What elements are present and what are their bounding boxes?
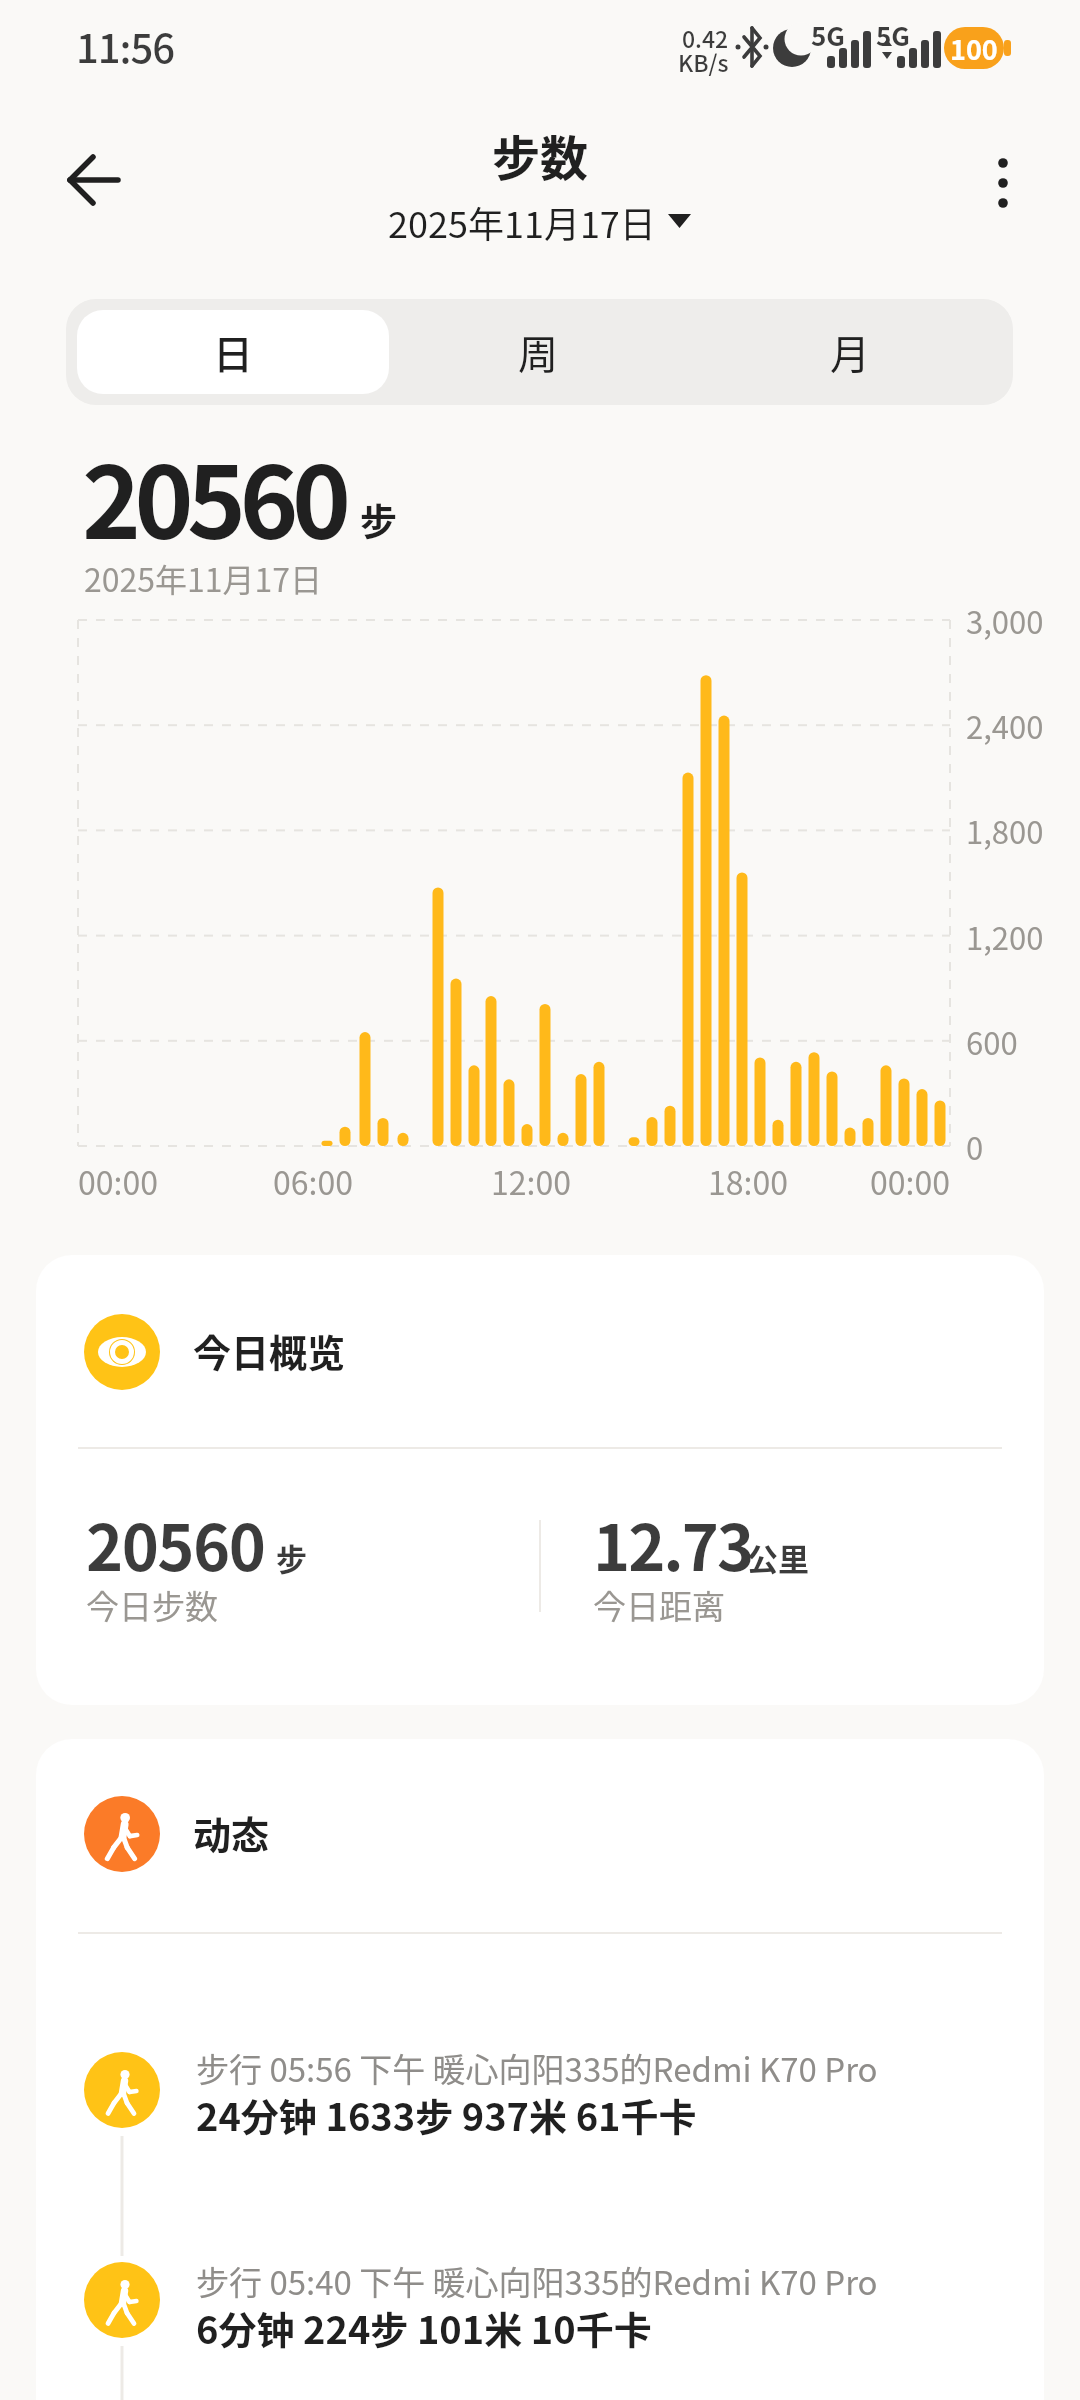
staticText: 步行 05:40 下午 暖心向阳335的Redmi K70 Pro — [196, 2257, 878, 2305]
staticText: 0.42 — [682, 21, 729, 54]
staticText: 6分钟 224步 101米 10千卡 — [196, 2300, 652, 2355]
staticText: 00:00 — [870, 1158, 950, 1204]
staticText: 2025年11月17日 — [84, 555, 323, 601]
button[interactable] — [701, 299, 1013, 405]
staticText: 20560 — [86, 1498, 265, 1589]
staticText: 日 — [213, 323, 253, 381]
staticText: 月 — [830, 323, 870, 381]
staticText: 0 — [966, 1124, 984, 1169]
staticText: 11:56 — [76, 17, 175, 75]
staticText: 1,200 — [966, 914, 1044, 959]
staticText: 周 — [518, 323, 558, 381]
staticText: 12.73 — [593, 1498, 753, 1589]
staticText: 步 — [360, 493, 397, 547]
staticText: 步 — [276, 1535, 307, 1580]
staticText: 2025年11月17日 — [388, 196, 656, 248]
staticText: 00:00 — [78, 1158, 158, 1204]
staticText: 600 — [966, 1019, 1018, 1064]
button[interactable] — [36, 1255, 1044, 1705]
staticText: 5G — [876, 16, 910, 54]
button[interactable] — [389, 299, 701, 405]
staticText: 24分钟 1633步 937米 61千卡 — [196, 2087, 697, 2142]
staticText: 3,000 — [966, 598, 1044, 643]
staticText: 动态 — [193, 1805, 270, 1860]
button[interactable] — [968, 143, 1040, 223]
staticText: 步行 05:56 下午 暖心向阳335的Redmi K70 Pro — [196, 2044, 878, 2092]
staticText: 100 — [950, 29, 998, 68]
button[interactable] — [380, 196, 700, 248]
button[interactable] — [60, 2040, 1020, 2150]
staticText: 今日距离 — [593, 1581, 725, 1629]
staticText: 今日概览 — [193, 1323, 346, 1378]
staticText: 20560 — [82, 423, 345, 568]
staticText: 今日步数 — [86, 1581, 218, 1629]
button[interactable] — [60, 140, 140, 220]
staticText: 1,800 — [966, 808, 1044, 853]
staticText: 2,400 — [966, 703, 1044, 748]
staticText: 公里 — [747, 1535, 809, 1580]
staticText: 5G — [811, 16, 845, 54]
staticText: 06:00 — [273, 1158, 353, 1204]
button[interactable] — [60, 2250, 1020, 2360]
staticText: KB/s — [678, 45, 729, 78]
staticText: 18:00 — [708, 1158, 788, 1204]
staticText: 12:00 — [491, 1158, 571, 1204]
staticText: 步数 — [492, 120, 589, 190]
button[interactable] — [77, 310, 389, 394]
